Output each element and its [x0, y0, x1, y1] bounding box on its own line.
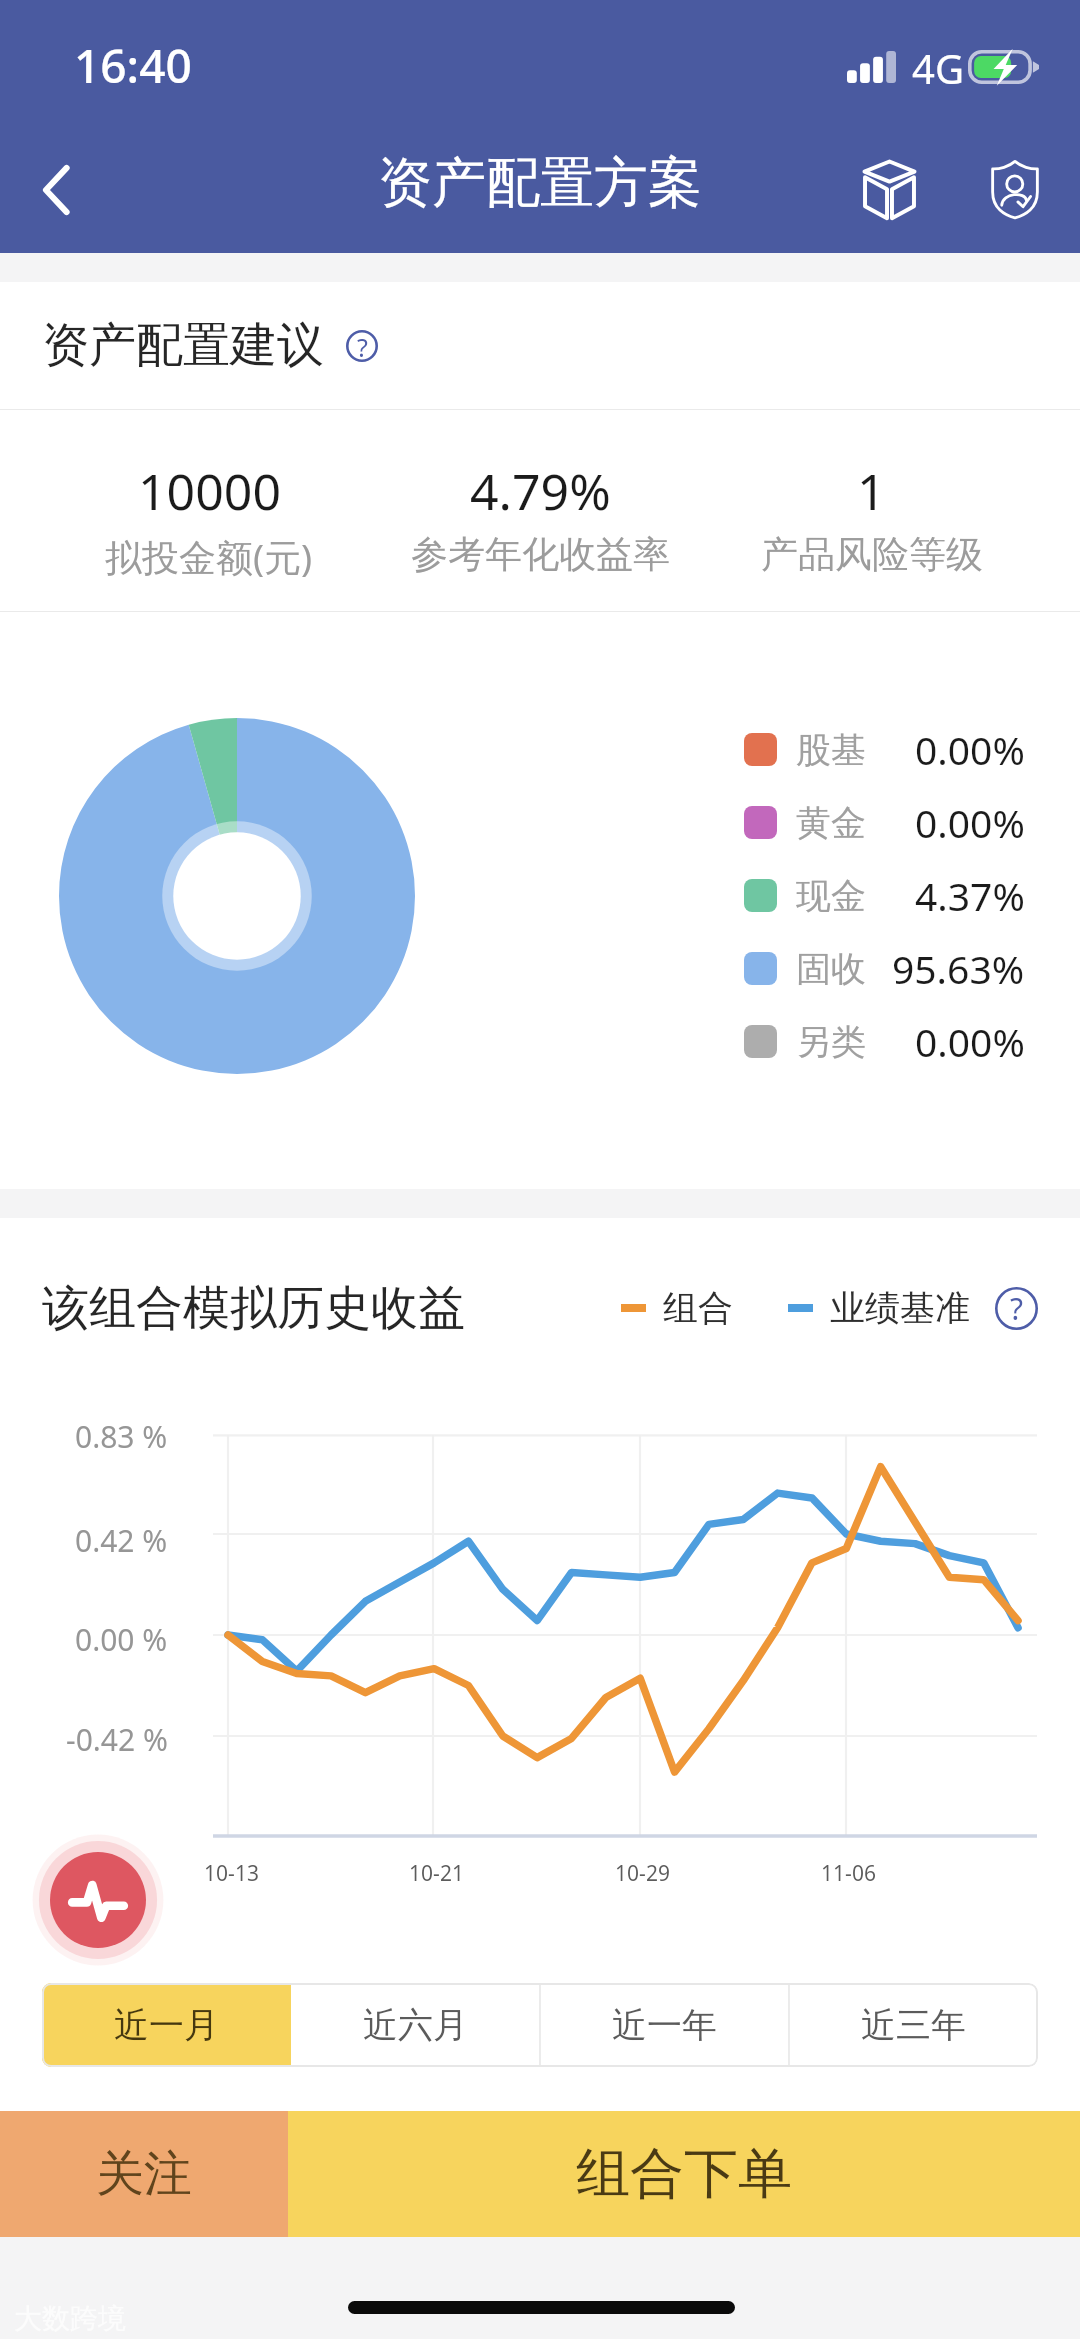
- staticText: 0.00%: [915, 1015, 1025, 1068]
- button[interactable]: Account security: [955, 112, 1075, 253]
- staticText: 10-13: [204, 1859, 259, 1888]
- staticText: 1: [857, 457, 886, 525]
- staticText: 近一年: [612, 2003, 717, 2047]
- staticText: ?: [1010, 1288, 1024, 1329]
- staticText: 股基: [796, 728, 866, 772]
- staticText: 业绩基准: [830, 1286, 970, 1330]
- staticText: 固收: [796, 947, 866, 991]
- button[interactable]: Help: [340, 324, 384, 368]
- staticText: 资产配置方案: [378, 149, 702, 217]
- staticText: 组合下单: [576, 2140, 792, 2208]
- staticText: 组合: [663, 1286, 733, 1330]
- staticText: 资产配置建议: [42, 316, 324, 375]
- button[interactable]: 近三年: [789, 1983, 1038, 2067]
- staticText: 黄金: [796, 801, 866, 845]
- staticText: 0.42 %: [75, 1520, 168, 1561]
- button[interactable]: Portfolio box: [829, 112, 949, 253]
- staticText: 参考年化收益率: [411, 531, 670, 578]
- staticText: 另类: [796, 1020, 866, 1064]
- staticText: 11-06: [821, 1859, 876, 1888]
- staticText: 关注: [96, 2144, 192, 2204]
- button[interactable]: Back: [0, 112, 120, 253]
- staticText: 0.00%: [915, 723, 1025, 776]
- staticText: 10-29: [615, 1859, 670, 1888]
- staticText: 拟投金额(元): [105, 531, 313, 582]
- staticText: 10-21: [409, 1859, 464, 1888]
- staticText: 0.00%: [915, 796, 1025, 849]
- staticText: -0.42 %: [66, 1719, 168, 1760]
- button[interactable]: Risk assessment: [38, 1840, 158, 1960]
- staticText: 10000: [138, 457, 281, 525]
- staticText: 16:40: [74, 34, 192, 97]
- staticText: 该组合模拟历史收益: [42, 1279, 465, 1338]
- staticText: 95.63%: [892, 942, 1025, 995]
- staticText: 近三年: [861, 2003, 966, 2047]
- staticText: 4G: [912, 41, 964, 95]
- staticText: 4.79%: [470, 457, 611, 525]
- staticText: 0.00 %: [75, 1619, 168, 1660]
- staticText: 产品风险等级: [761, 531, 983, 578]
- staticText: 4.37%: [915, 869, 1025, 922]
- staticText: 近六月: [363, 2003, 468, 2047]
- button[interactable]: 近六月: [291, 1983, 540, 2067]
- button[interactable]: 组合下单: [288, 2111, 1080, 2237]
- staticText: 近一月: [114, 2003, 219, 2047]
- staticText: 0.83 %: [75, 1416, 168, 1457]
- button[interactable]: 近一月: [42, 1983, 291, 2067]
- staticText: 现金: [796, 874, 866, 918]
- staticText: 大数跨境: [14, 2301, 126, 2336]
- staticText: ?: [357, 330, 368, 362]
- button[interactable]: Help: [992, 1284, 1040, 1332]
- button[interactable]: 近一年: [540, 1983, 789, 2067]
- button[interactable]: 关注: [0, 2111, 288, 2237]
